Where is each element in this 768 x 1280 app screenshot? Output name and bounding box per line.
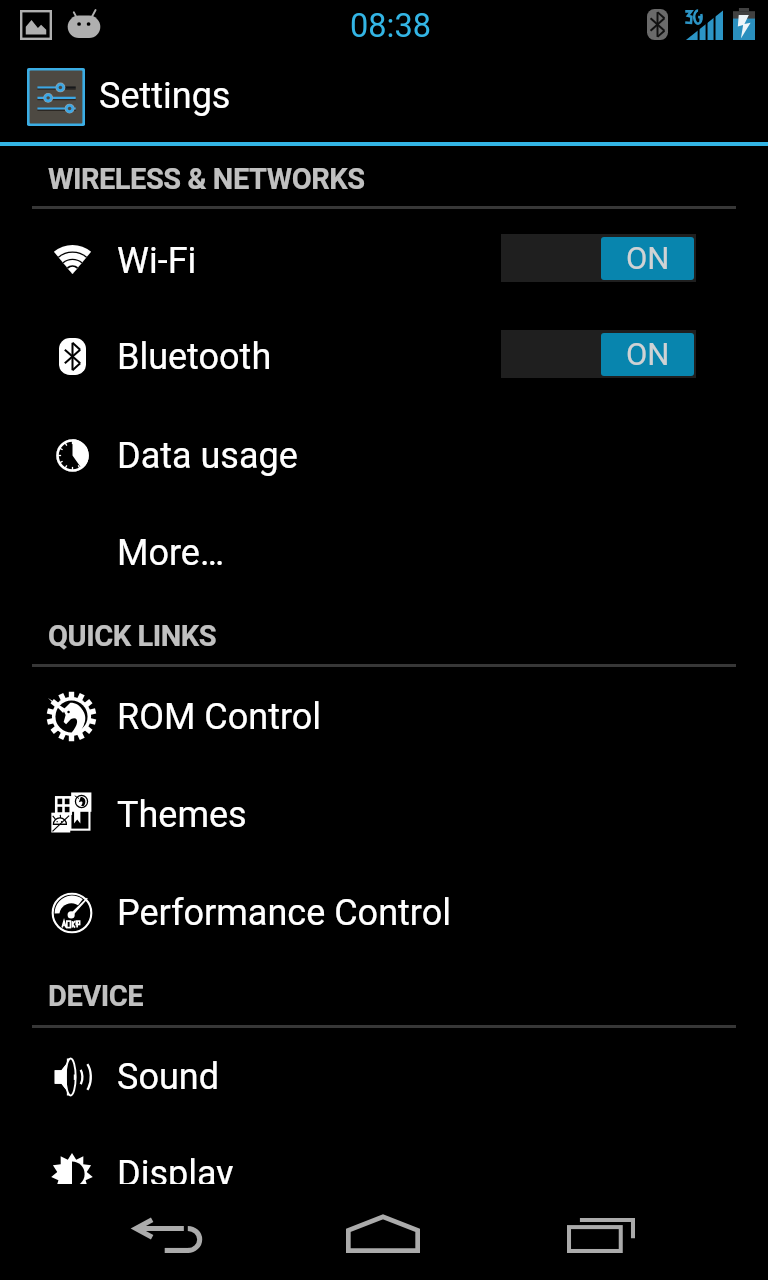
staticText: More… <box>117 532 224 574</box>
button[interactable]: Settings <box>0 50 768 142</box>
staticText: Display <box>117 1153 234 1184</box>
staticText: Data usage <box>117 435 298 477</box>
staticText: DEVICE <box>48 979 144 1013</box>
button[interactable]: Wi-Fi <box>0 212 768 310</box>
staticText: WIRELESS & NETWORKS <box>48 162 365 196</box>
button[interactable]: Bluetooth <box>0 308 768 406</box>
staticText: Wi-Fi <box>117 240 197 282</box>
staticText: ON <box>626 240 670 276</box>
button[interactable]: Toggle on <box>501 330 696 378</box>
button[interactable]: Data usage <box>0 407 768 505</box>
button[interactable]: Themes <box>0 766 768 864</box>
staticText: ROM Control <box>117 696 322 738</box>
staticText: Settings <box>99 75 231 117</box>
staticText: Performance Control <box>117 892 451 934</box>
staticText: 08:38 <box>350 7 431 45</box>
button[interactable]: Display <box>0 1125 768 1184</box>
staticText: QUICK LINKS <box>48 619 217 653</box>
staticText: ON <box>626 336 670 372</box>
staticText: Sound <box>117 1056 219 1098</box>
button[interactable]: Back <box>108 1195 228 1280</box>
button[interactable]: Sound <box>0 1028 768 1126</box>
staticText: Bluetooth <box>117 336 272 378</box>
button[interactable]: Recent apps <box>541 1195 661 1280</box>
button[interactable]: Home <box>323 1195 443 1280</box>
button[interactable]: More… <box>0 504 768 602</box>
staticText: Themes <box>117 794 247 836</box>
button[interactable]: Toggle on <box>501 234 696 282</box>
button[interactable]: Performance Control <box>0 864 768 962</box>
button[interactable]: ROM Control <box>0 668 768 766</box>
